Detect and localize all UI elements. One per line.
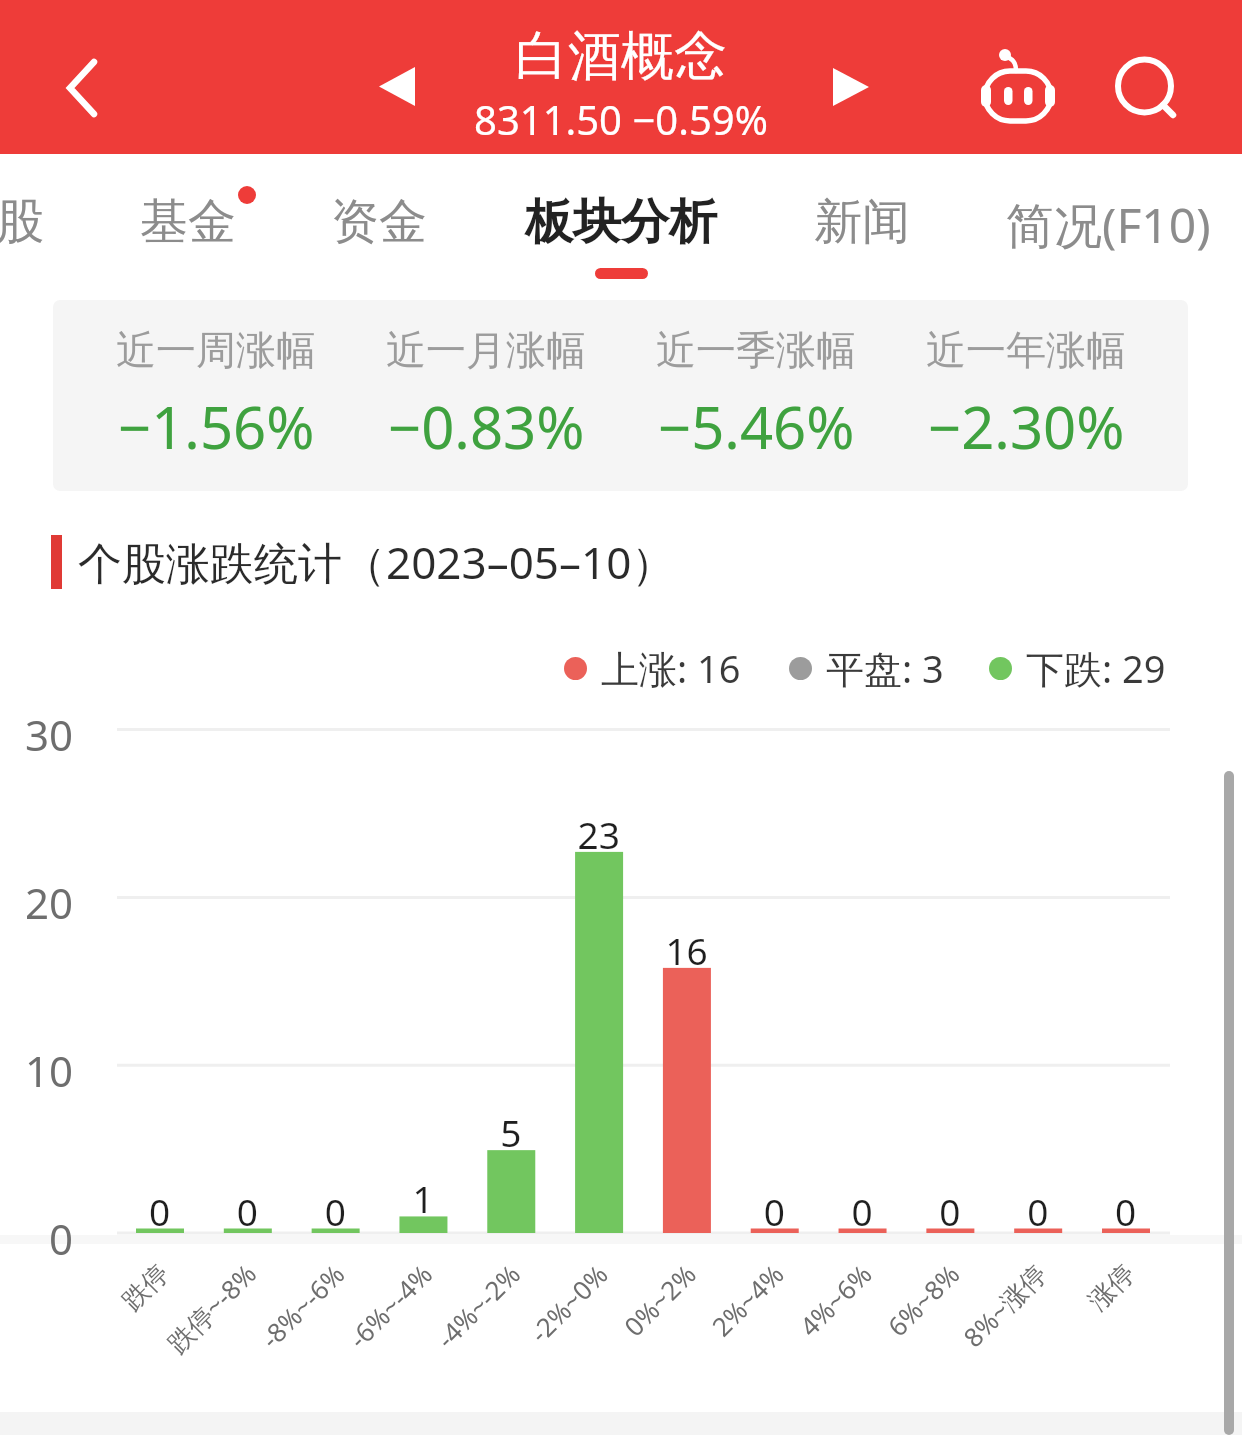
staticText: 近一年涨幅 [926, 325, 1126, 375]
button[interactable]: Previous sector [359, 47, 439, 127]
staticText: −0.83% [388, 387, 585, 466]
button[interactable]: 近一年涨幅 [891, 300, 1161, 491]
button[interactable]: 新闻 [810, 154, 914, 300]
button[interactable]: 资金 [327, 154, 431, 300]
button[interactable]: 近一月涨幅 [351, 300, 621, 491]
button[interactable]: 简况(F10) [958, 154, 1242, 300]
button[interactable]: 板块分析 [517, 154, 725, 300]
staticText: 新闻 [814, 192, 910, 252]
staticText: 上涨: 16 [601, 642, 741, 694]
button[interactable]: 基金 [136, 154, 240, 300]
button[interactable]: Search [1100, 41, 1192, 133]
staticText: 平盘: 3 [826, 642, 944, 694]
button[interactable]: Back [22, 43, 112, 133]
staticText: 近一季涨幅 [656, 325, 856, 375]
button[interactable]: 股 [0, 154, 46, 300]
staticText: 基金 [140, 192, 236, 252]
staticText: −5.46% [658, 387, 855, 466]
staticText: 下跌: 29 [1026, 642, 1166, 694]
staticText: 简况(F10) [1006, 192, 1211, 258]
button[interactable]: AI assistant [973, 41, 1065, 133]
button[interactable]: 上涨: 16 [564, 642, 741, 694]
button[interactable]: 近一周涨幅 [81, 300, 351, 491]
button[interactable]: Next sector [813, 48, 893, 128]
staticText: 近一周涨幅 [116, 325, 316, 375]
staticText: 近一月涨幅 [386, 325, 586, 375]
staticText: 资金 [331, 192, 427, 252]
staticText: 白酒概念 [515, 23, 727, 90]
staticText: 板块分析 [525, 192, 717, 252]
button[interactable]: 平盘: 3 [789, 642, 944, 694]
staticText: −1.56% [118, 387, 315, 466]
staticText: 股 [0, 192, 44, 252]
staticText: 8311.50 −0.59% [474, 92, 768, 146]
button[interactable]: 下跌: 29 [989, 642, 1166, 694]
staticText: 个股涨跌统计（2023–05–10） [78, 532, 676, 592]
button[interactable]: 近一季涨幅 [621, 300, 891, 491]
staticText: −2.30% [928, 387, 1125, 466]
